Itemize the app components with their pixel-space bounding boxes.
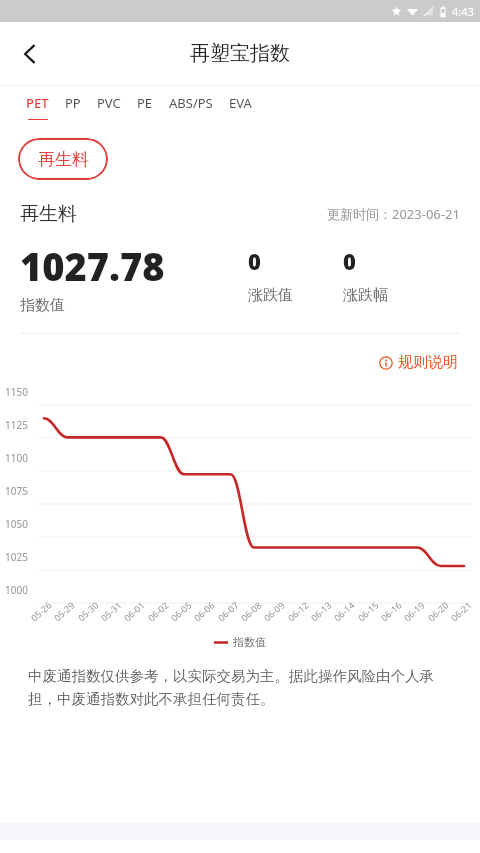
staticText: 06-13: [308, 598, 334, 623]
staticText: 06-15: [355, 598, 381, 623]
staticText: 1100: [5, 451, 28, 465]
staticText: 1050: [5, 517, 28, 531]
staticText: 再生料: [20, 202, 77, 226]
staticText: 06-06: [191, 598, 217, 623]
staticText: PE: [137, 94, 153, 112]
staticText: 1025: [5, 550, 28, 564]
staticText: 指数值: [20, 296, 65, 315]
button[interactable]: PET: [18, 86, 57, 128]
staticText: 06-21: [448, 598, 474, 623]
staticText: 06-05: [168, 598, 194, 623]
staticText: 06-14: [331, 598, 357, 623]
staticText: 再塑宝指数: [190, 41, 290, 66]
staticText: 06-07: [215, 598, 241, 623]
staticText: 涨跌幅: [343, 286, 388, 305]
staticText: 中废通指数仅供参考，以实际交易为主。据此操作风险由个人承担，中废通指数对此不承担…: [28, 667, 452, 708]
button[interactable]: PVC: [89, 86, 129, 127]
button[interactable]: PP: [57, 86, 89, 127]
staticText: 1000: [5, 583, 28, 597]
staticText: PET: [26, 94, 49, 112]
staticText: 06-08: [238, 598, 264, 623]
staticText: 4:43: [452, 4, 474, 19]
staticText: EVA: [229, 94, 252, 112]
button[interactable]: Back: [8, 32, 52, 76]
staticText: 涨跌值: [248, 286, 293, 305]
staticText: 更新时间：2023-06-21: [327, 205, 460, 223]
staticText: 0: [343, 246, 356, 276]
staticText: 1150: [5, 385, 28, 399]
staticText: 规则说明: [398, 353, 458, 372]
button[interactable]: 再生料: [18, 138, 108, 180]
staticText: 1125: [5, 418, 28, 432]
staticText: 指数值: [233, 635, 266, 649]
button[interactable]: 规则说明: [375, 349, 462, 376]
staticText: PVC: [97, 94, 121, 112]
button[interactable]: ABS/PS: [161, 86, 221, 127]
staticText: 05-31: [98, 598, 124, 623]
staticText: 05-30: [75, 598, 101, 623]
staticText: 05-26: [28, 598, 54, 623]
staticText: 06-09: [261, 598, 287, 623]
staticText: 06-20: [425, 598, 451, 623]
staticText: 再生料: [38, 149, 89, 170]
staticText: 06-12: [285, 598, 311, 623]
staticText: 06-02: [145, 598, 171, 623]
button[interactable]: EVA: [221, 86, 260, 127]
staticText: 05-29: [51, 598, 77, 623]
staticText: 1027.78: [20, 240, 165, 292]
staticText: 0: [248, 246, 261, 276]
button[interactable]: PE: [129, 86, 161, 127]
staticText: PP: [65, 94, 81, 112]
staticText: ABS/PS: [169, 94, 213, 112]
staticText: 06-19: [401, 598, 427, 623]
staticText: 06-16: [378, 598, 404, 623]
staticText: 06-01: [121, 598, 147, 623]
staticText: 1075: [5, 484, 28, 498]
